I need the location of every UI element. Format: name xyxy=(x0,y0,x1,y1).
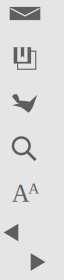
button[interactable]: Library xyxy=(14,47,36,70)
button[interactable]: Bookmarks xyxy=(11,94,37,113)
button[interactable]: Next page xyxy=(31,253,45,271)
button[interactable]: Text size xyxy=(12,180,39,207)
staticText: A xyxy=(28,180,39,197)
button[interactable]: Share xyxy=(10,7,40,20)
staticText: A xyxy=(12,180,30,207)
button[interactable]: Previous page xyxy=(4,224,18,241)
button[interactable]: Search xyxy=(13,137,37,161)
